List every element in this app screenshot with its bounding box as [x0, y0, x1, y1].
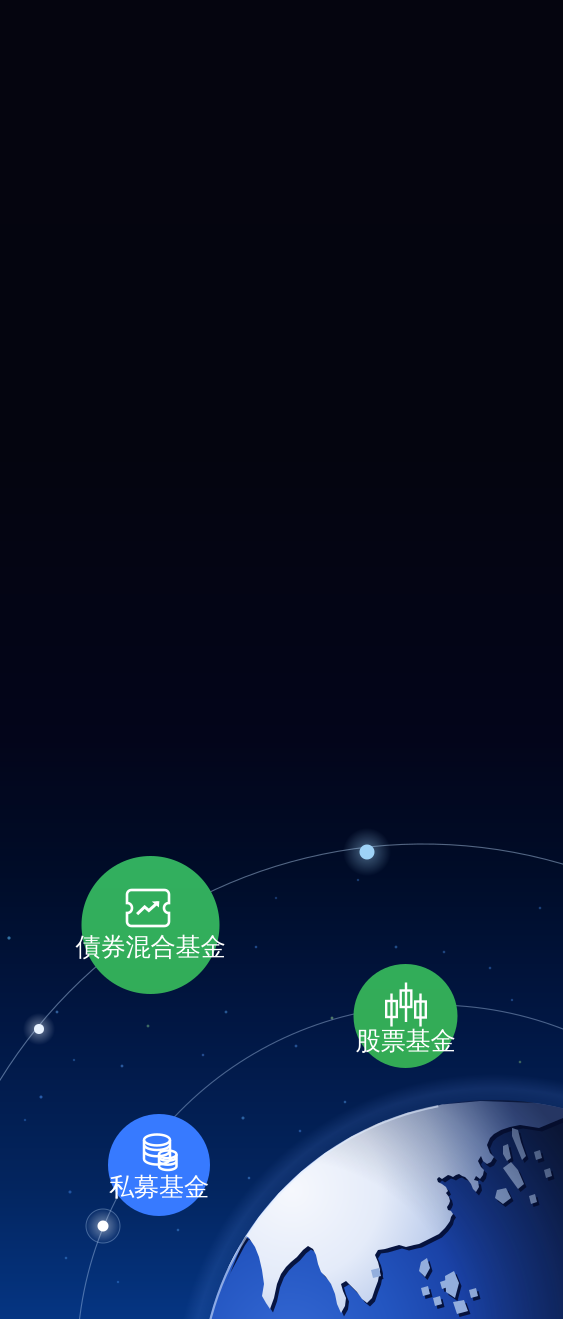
staticText: 私募基金 [109, 1171, 209, 1202]
staticText: 股票基金 [355, 1025, 455, 1056]
button[interactable]: 私募基金 [0, 0, 563, 1319]
button[interactable]: 債券混合基金 [0, 0, 563, 1319]
button[interactable]: 股票基金 [0, 0, 563, 1319]
staticText: 債券混合基金 [75, 931, 225, 962]
